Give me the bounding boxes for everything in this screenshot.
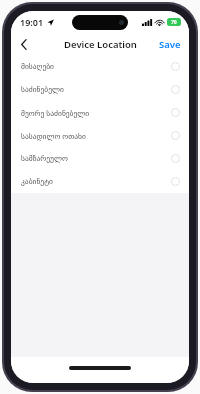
button[interactable]: Save xyxy=(151,33,189,55)
button[interactable]: კაბინეტი xyxy=(11,170,189,193)
staticText: მისაღები xyxy=(21,62,171,71)
staticText: Device Location xyxy=(64,38,137,51)
button[interactable]: Back xyxy=(11,33,37,55)
button[interactable]: სამზარეულო xyxy=(11,147,189,170)
button[interactable]: მეორე საძინებელი xyxy=(11,101,189,124)
staticText: 19:01 xyxy=(20,16,44,28)
staticText: Save xyxy=(159,38,181,51)
staticText: კაბინეტი xyxy=(21,177,171,186)
staticText: სასადილო ოთახი xyxy=(21,131,171,141)
staticText: სამზარეულო xyxy=(21,154,171,163)
button[interactable]: სასადილო ოთახი xyxy=(11,124,189,147)
staticText: 70 xyxy=(171,19,177,26)
staticText: მეორე საძინებელი xyxy=(21,108,171,118)
button[interactable]: მისაღები xyxy=(11,55,189,78)
button[interactable]: საძინებელი xyxy=(11,78,189,101)
staticText: საძინებელი xyxy=(21,85,171,94)
